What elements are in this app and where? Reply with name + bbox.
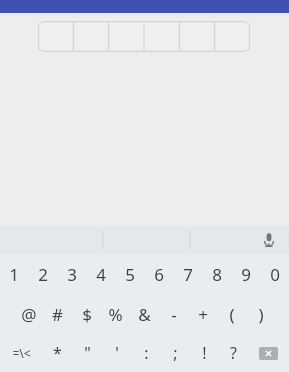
button[interactable]: 5 bbox=[115, 254, 144, 294]
staticText: 1 bbox=[9, 263, 19, 286]
button[interactable]: Digit 5 bbox=[180, 21, 215, 52]
button[interactable]: Backspace bbox=[248, 334, 289, 372]
button[interactable]: Digit 6 bbox=[215, 21, 250, 52]
button[interactable]: 0 bbox=[260, 254, 289, 294]
button[interactable]: & bbox=[130, 294, 159, 334]
button[interactable]: Digit 3 bbox=[110, 21, 145, 52]
button[interactable]: =\< bbox=[0, 334, 42, 372]
button[interactable]: 4 bbox=[86, 254, 115, 294]
staticText: ( bbox=[229, 303, 235, 326]
staticText: ; bbox=[173, 342, 178, 364]
button[interactable]: # bbox=[43, 294, 72, 334]
staticText: 6 bbox=[154, 263, 164, 286]
button[interactable]: * bbox=[42, 334, 72, 372]
button[interactable]: ) bbox=[246, 294, 275, 334]
staticText: 8 bbox=[212, 263, 222, 286]
staticText: % bbox=[108, 303, 123, 326]
button[interactable]: @ bbox=[14, 294, 43, 334]
button[interactable]: Digit 2 bbox=[74, 21, 110, 52]
button[interactable]: Voice input bbox=[258, 229, 280, 251]
button[interactable]: 1 bbox=[0, 254, 28, 294]
button[interactable]: " bbox=[72, 334, 102, 372]
button[interactable]: Digit 1 bbox=[38, 21, 74, 52]
button[interactable]: : bbox=[132, 334, 161, 372]
staticText: 3 bbox=[67, 263, 77, 286]
button[interactable]: Digit 1 bbox=[38, 21, 250, 52]
button[interactable]: 6 bbox=[144, 254, 173, 294]
staticText: - bbox=[171, 303, 177, 326]
staticText: 2 bbox=[38, 263, 48, 286]
button[interactable]: 9 bbox=[231, 254, 260, 294]
button[interactable]: ; bbox=[161, 334, 190, 372]
button[interactable]: % bbox=[101, 294, 130, 334]
staticText: @ bbox=[21, 303, 37, 326]
button[interactable]: - bbox=[159, 294, 188, 334]
staticText: ! bbox=[202, 342, 207, 364]
staticText: * bbox=[53, 342, 62, 364]
staticText: 4 bbox=[96, 263, 106, 286]
button[interactable]: + bbox=[188, 294, 217, 334]
staticText: 9 bbox=[241, 263, 251, 286]
button[interactable]: Digit 4 bbox=[145, 21, 180, 52]
staticText: =\< bbox=[12, 345, 31, 361]
staticText: 7 bbox=[183, 263, 193, 286]
staticText: 0 bbox=[270, 263, 280, 286]
staticText: " bbox=[84, 342, 91, 364]
staticText: + bbox=[198, 303, 208, 326]
button[interactable]: ! bbox=[190, 334, 219, 372]
button[interactable]: 8 bbox=[202, 254, 231, 294]
staticText: ) bbox=[258, 303, 264, 326]
button[interactable]: 2 bbox=[28, 254, 57, 294]
button[interactable]: ( bbox=[217, 294, 246, 334]
button[interactable]: ? bbox=[219, 334, 248, 372]
staticText: & bbox=[138, 303, 151, 326]
staticText: : bbox=[144, 342, 149, 364]
staticText: ' bbox=[115, 342, 119, 364]
staticText: ? bbox=[230, 342, 237, 364]
staticText: 5 bbox=[125, 263, 135, 286]
staticText: # bbox=[52, 303, 63, 326]
button[interactable]: 7 bbox=[173, 254, 202, 294]
button[interactable]: $ bbox=[72, 294, 101, 334]
button[interactable]: ' bbox=[102, 334, 132, 372]
button[interactable]: 3 bbox=[57, 254, 86, 294]
staticText: $ bbox=[82, 303, 92, 326]
